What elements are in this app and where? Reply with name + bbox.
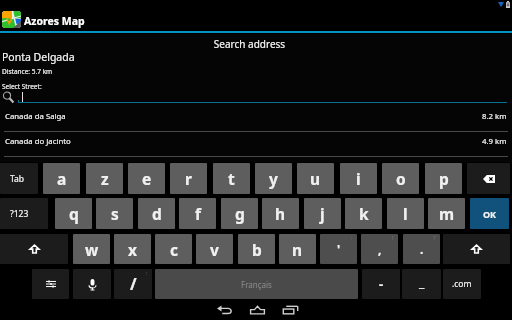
button[interactable]: n (279, 234, 316, 264)
staticText: f (195, 203, 201, 224)
button[interactable]: Recent apps (273, 299, 307, 320)
staticText: n (292, 239, 303, 260)
button[interactable]: ' (320, 234, 357, 264)
button[interactable]: c (155, 234, 192, 264)
staticText: Distance: 5.7 km (2, 67, 53, 76)
button[interactable]: d (138, 198, 175, 229)
button[interactable]: / (114, 269, 152, 299)
button[interactable]: - (362, 269, 400, 299)
staticText: v (210, 239, 219, 260)
button[interactable]: l (387, 198, 424, 229)
button[interactable]: i (340, 163, 377, 194)
staticText: OK (483, 208, 497, 220)
button[interactable]: Tab (0, 163, 38, 194)
button[interactable]: e (128, 163, 165, 194)
button[interactable]: p (425, 163, 462, 194)
staticText: ' (337, 241, 341, 257)
staticText: Canada do Jacinto (5, 136, 71, 147)
button[interactable]: Voice input (73, 269, 111, 299)
staticText: , (378, 241, 382, 257)
button[interactable]: u (297, 163, 334, 194)
button[interactable]: b (238, 234, 275, 264)
button[interactable]: Français (155, 269, 358, 299)
button[interactable]: w (73, 234, 110, 264)
button[interactable]: z (86, 163, 123, 194)
staticText: g (235, 203, 245, 224)
staticText: Select Street: (2, 82, 42, 91)
staticText: 4.9 km (482, 136, 507, 147)
staticText: .com (452, 278, 472, 290)
staticText: t (228, 168, 235, 189)
button[interactable]: Back (207, 299, 241, 320)
staticText: - (379, 275, 384, 293)
staticText: p (439, 168, 449, 189)
staticText: o (396, 168, 406, 189)
other: Battery (506, 1, 510, 8)
button[interactable]: OK (470, 198, 509, 229)
button[interactable]: j (304, 198, 341, 229)
staticText: m (439, 203, 455, 224)
button[interactable]: Canada do Jacinto (0, 131, 512, 157)
staticText: Search address (0, 37, 499, 51)
button[interactable]: r (170, 163, 207, 194)
staticText: / (130, 273, 137, 295)
button[interactable]: ?123 (0, 198, 48, 229)
staticText: j (320, 203, 325, 224)
staticText: c (170, 239, 178, 260)
button[interactable]: Shift (443, 234, 510, 264)
staticText: k (359, 203, 369, 224)
button[interactable]: v (196, 234, 233, 264)
button[interactable]: Backspace (467, 163, 510, 194)
staticText: z (101, 168, 109, 189)
button[interactable]: m (428, 198, 465, 229)
staticText: Français (241, 279, 272, 290)
staticText: u (310, 168, 321, 189)
staticText: h (275, 203, 286, 224)
button[interactable]: h (262, 198, 299, 229)
button[interactable]: q (55, 198, 92, 229)
staticText: a (57, 168, 67, 189)
button[interactable]: o (382, 163, 419, 194)
staticText: r (185, 168, 192, 189)
staticText: b (252, 239, 262, 260)
button[interactable]: Switch input method (32, 269, 69, 299)
button[interactable]: y (255, 163, 292, 194)
staticText: x (128, 239, 137, 260)
staticText: ? (433, 234, 436, 242)
staticText: : (146, 269, 148, 277)
staticText: . (420, 241, 424, 257)
button[interactable]: . (403, 234, 440, 264)
staticText: _ (419, 273, 425, 291)
staticText: l (403, 203, 408, 224)
staticText: y (269, 168, 278, 189)
staticText: ! (392, 234, 394, 242)
button[interactable]: .com (443, 269, 481, 299)
staticText: Ponta Delgada (2, 50, 75, 64)
button[interactable]: s (96, 198, 133, 229)
button[interactable]: Home (240, 299, 274, 320)
staticText: s (111, 203, 119, 224)
button[interactable]: a (43, 163, 80, 194)
button[interactable]: Shift (0, 234, 68, 264)
staticText: Azores Map (24, 14, 85, 28)
button[interactable]: t (213, 163, 250, 194)
staticText: d (152, 203, 162, 224)
staticText: ?123 (10, 208, 29, 220)
staticText: q (69, 203, 79, 224)
button[interactable]: , (361, 234, 398, 264)
other: Wi-Fi (498, 2, 504, 7)
staticText: Tab (10, 173, 25, 185)
button[interactable]: f (179, 198, 216, 229)
button[interactable]: g (221, 198, 258, 229)
staticText: Canada da Salga (5, 111, 66, 122)
button[interactable]: k (345, 198, 382, 229)
staticText: e (142, 168, 152, 189)
staticText: : (351, 234, 353, 242)
button[interactable]: Canada da Salga (0, 106, 512, 132)
other: Search (2, 91, 16, 105)
staticText: w (85, 239, 99, 260)
button[interactable]: _ (402, 269, 441, 299)
staticText: 8.2 km (482, 111, 507, 122)
staticText: i (356, 168, 361, 189)
button[interactable]: x (114, 234, 151, 264)
